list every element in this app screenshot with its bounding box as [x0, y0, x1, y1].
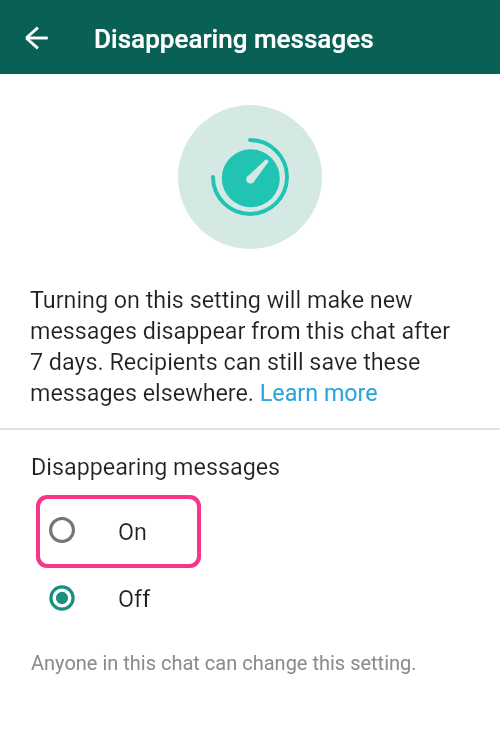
staticText: Disappearing messages	[94, 24, 374, 54]
button[interactable]: On	[40, 499, 197, 564]
staticText: Anyone in this chat can change this sett…	[31, 651, 417, 674]
button[interactable]: Off	[0, 572, 500, 624]
staticText: On	[118, 518, 147, 545]
button[interactable]: Back	[13, 14, 61, 62]
staticText: Turning on this setting will make new me…	[30, 286, 462, 407]
staticText: Off	[118, 585, 151, 612]
staticText: Disappearing messages	[31, 453, 281, 480]
button[interactable]: Learn more	[258, 381, 380, 409]
